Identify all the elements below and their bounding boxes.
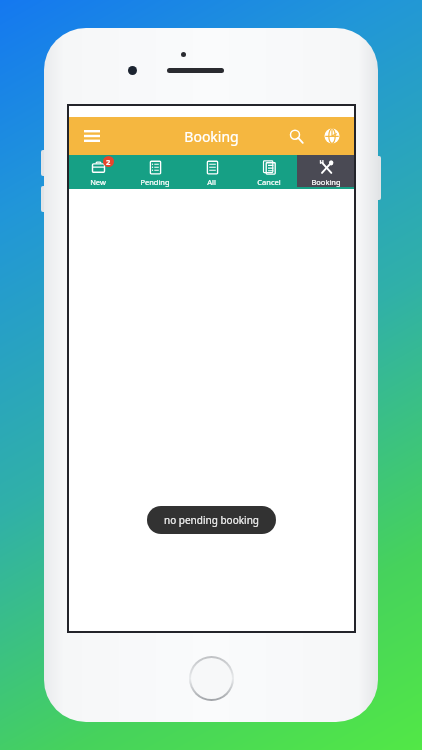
button[interactable]: Menu xyxy=(75,119,109,153)
staticText: Booking xyxy=(184,127,239,146)
button[interactable]: Search xyxy=(280,120,312,152)
staticText: All xyxy=(207,177,216,187)
button[interactable]: Language xyxy=(316,120,348,152)
button[interactable]: 2 xyxy=(69,155,126,187)
staticText: Pending xyxy=(140,177,170,187)
staticText: 2 xyxy=(106,157,111,167)
button[interactable]: All xyxy=(183,155,240,187)
staticText: New xyxy=(90,177,106,187)
button[interactable]: Pending xyxy=(126,155,183,187)
staticText: Booking xyxy=(311,177,341,187)
button[interactable]: Booking xyxy=(297,155,354,187)
button[interactable]: Home xyxy=(191,658,232,699)
staticText: Cancel xyxy=(257,177,281,187)
staticText: no pending booking xyxy=(164,513,259,527)
button[interactable]: Cancel xyxy=(240,155,297,187)
